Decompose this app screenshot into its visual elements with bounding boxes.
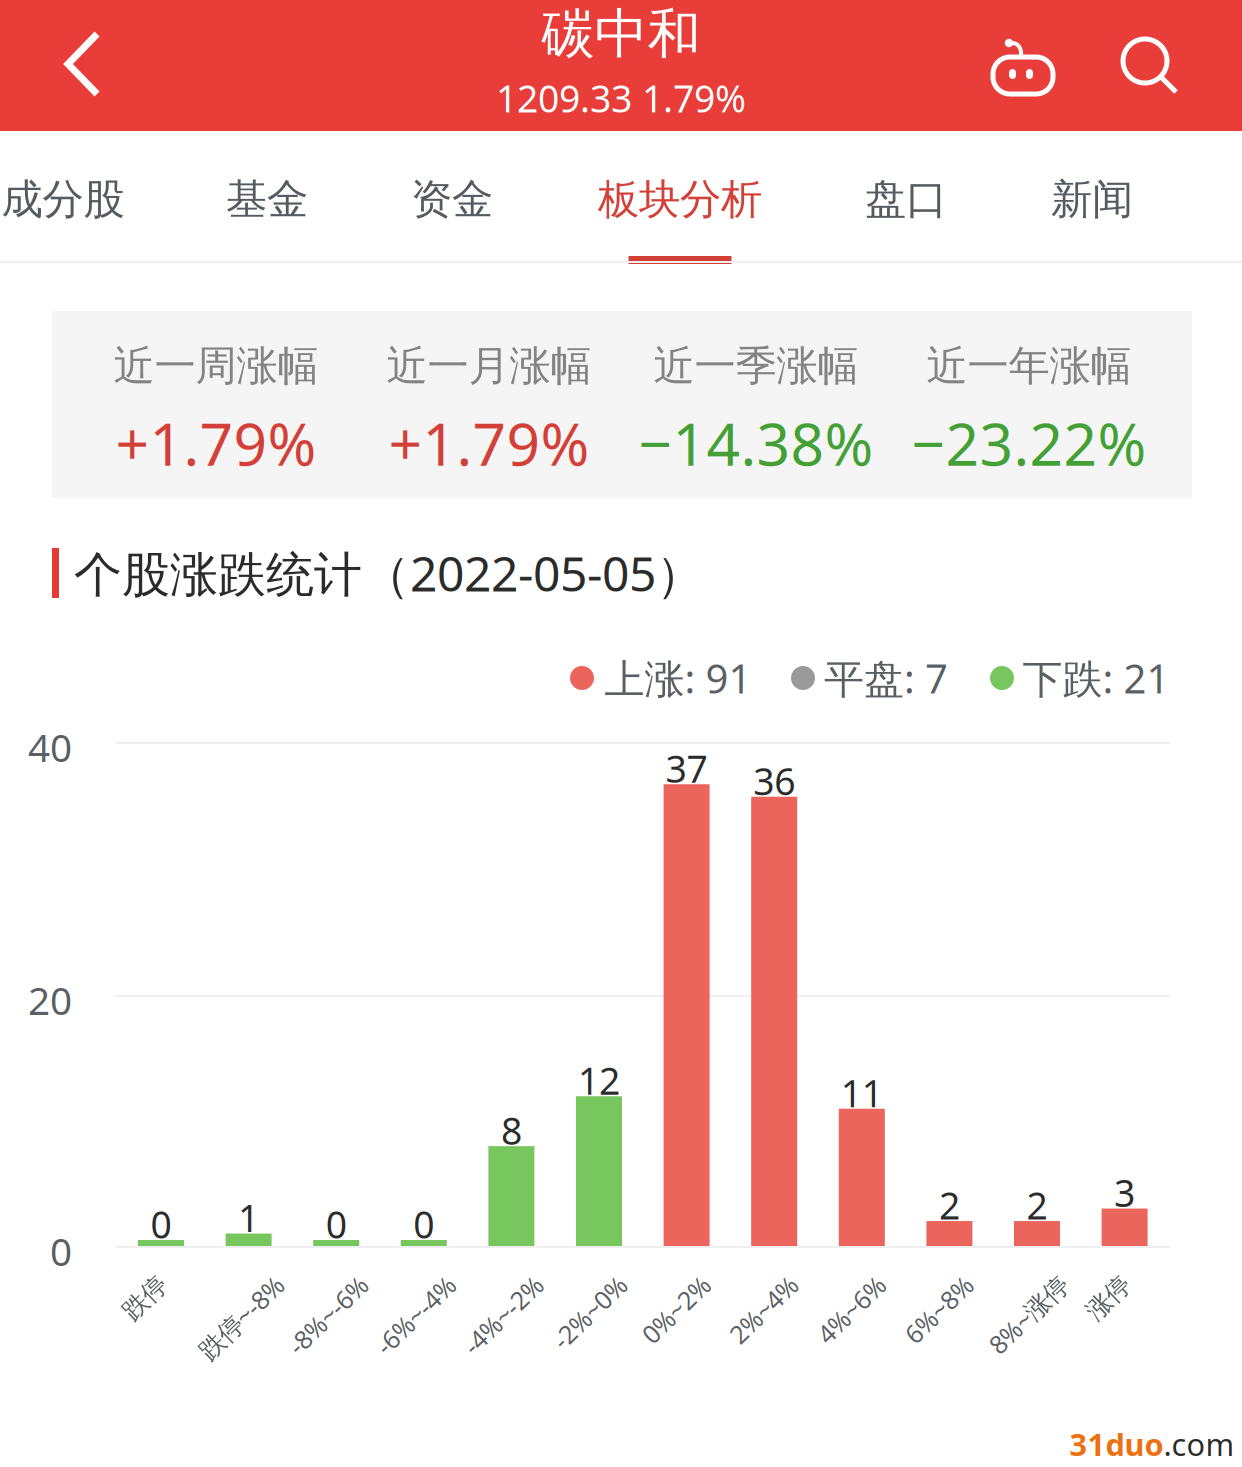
staticText: .com [1163, 1424, 1234, 1464]
button[interactable]: 盘口 [821, 131, 991, 262]
staticText: 2 [939, 1180, 960, 1230]
staticText: 2 [1026, 1180, 1047, 1230]
staticText: 20 [28, 974, 72, 1026]
staticText: -2%~0% [519, 1268, 611, 1302]
staticText: 8%~涨停 [953, 1268, 1052, 1302]
staticText: 上涨: 91 [604, 651, 751, 704]
staticText: -8%~-6% [252, 1268, 352, 1302]
staticText: 2%~4% [698, 1268, 782, 1302]
staticText: 40 [28, 721, 72, 773]
button[interactable]: 板块分析 [570, 131, 790, 262]
staticText: 近一月涨幅 [386, 341, 591, 391]
staticText: 4%~6% [786, 1268, 870, 1302]
staticText: 跌停~-8% [161, 1268, 268, 1302]
staticText: 11 [841, 1068, 883, 1117]
button[interactable]: Assistant [992, 30, 1058, 98]
staticText: 碳中和 [541, 1, 700, 67]
staticText: 6%~8% [873, 1268, 957, 1302]
staticText: -4%~-2% [427, 1268, 527, 1302]
staticText: −14.38% [638, 404, 873, 482]
staticText: 37 [666, 743, 708, 793]
button[interactable]: 成分股 [0, 131, 163, 262]
staticText: 近一年涨幅 [926, 341, 1131, 391]
staticText: 1209.33 1.79% [496, 73, 746, 123]
staticText: 基金 [226, 174, 308, 225]
button[interactable]: Search [1120, 37, 1182, 99]
staticText: 8 [501, 1105, 522, 1155]
staticText: 近一周涨幅 [113, 341, 318, 391]
staticText: 板块分析 [598, 174, 762, 225]
staticText: 1 [238, 1193, 259, 1242]
staticText: 近一季涨幅 [653, 341, 858, 391]
staticText: 跌停 [102, 1269, 152, 1300]
staticText: 0%~2% [611, 1268, 695, 1302]
staticText: 资金 [411, 174, 493, 225]
staticText: 36 [753, 756, 795, 805]
staticText: 12 [578, 1055, 620, 1105]
staticText: +1.79% [115, 404, 316, 482]
staticText: 成分股 [1, 174, 124, 225]
button[interactable]: 新闻 [1007, 131, 1177, 262]
staticText: +1.79% [388, 404, 589, 482]
staticText: 0 [150, 1199, 171, 1249]
button[interactable]: 资金 [367, 131, 537, 262]
staticText: −23.22% [911, 404, 1146, 482]
staticText: 3 [1114, 1168, 1135, 1217]
staticText: 0 [50, 1225, 72, 1277]
staticText: 31duo [1069, 1424, 1163, 1464]
staticText: 0 [413, 1199, 434, 1249]
staticText: 平盘: 7 [824, 651, 948, 704]
staticText: 新闻 [1051, 174, 1133, 225]
staticText: -6%~-4% [340, 1268, 440, 1302]
staticText: 下跌: 21 [1022, 651, 1169, 704]
staticText: 盘口 [865, 174, 947, 225]
staticText: 0 [326, 1199, 347, 1249]
staticText: 涨停 [1066, 1269, 1116, 1300]
staticText: 个股涨跌统计（2022-05-05） [74, 541, 704, 605]
button[interactable]: 基金 [182, 131, 352, 262]
button[interactable]: Back [23, 0, 143, 129]
